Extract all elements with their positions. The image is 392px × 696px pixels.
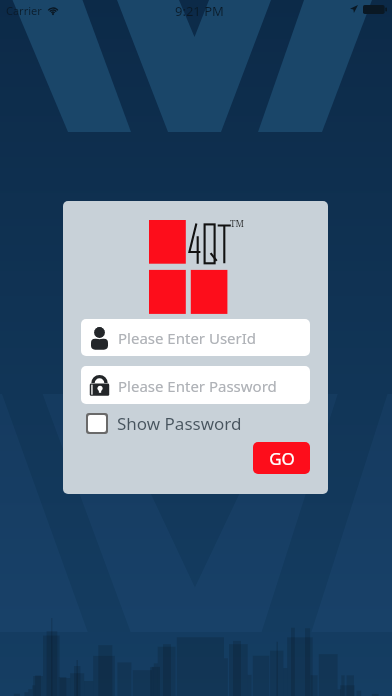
staticText: TM	[230, 217, 244, 229]
staticText: Please Enter UserId	[118, 328, 257, 348]
button[interactable]: Please Enter Password	[81, 366, 310, 404]
staticText: Carrier	[6, 3, 42, 18]
staticText: GO	[269, 447, 295, 470]
button[interactable]: Show Password	[86, 407, 242, 439]
button[interactable]: GO	[253, 442, 310, 474]
staticText: Please Enter Password	[118, 376, 277, 396]
staticText: Show Password	[117, 412, 242, 435]
button[interactable]: Please Enter UserId	[81, 319, 310, 356]
staticText: 9:21 PM	[175, 2, 224, 20]
